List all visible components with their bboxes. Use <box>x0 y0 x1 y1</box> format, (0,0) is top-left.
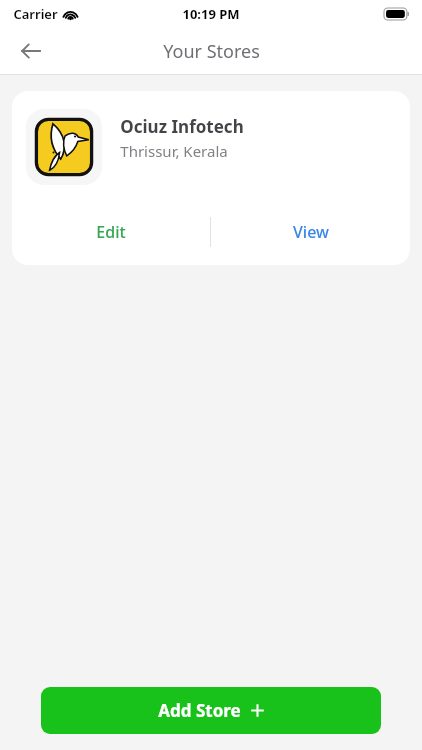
staticText: 10:19 PM <box>182 5 240 23</box>
staticText: Edit <box>96 221 126 243</box>
staticText: Thrissur, Kerala <box>120 141 228 161</box>
staticText: Carrier <box>13 5 58 23</box>
staticText: Add Store <box>158 699 241 722</box>
staticText: Ociuz Infotech <box>120 115 244 138</box>
button[interactable]: Edit <box>12 207 210 257</box>
staticText: Your Stores <box>163 39 260 64</box>
button[interactable]: View <box>211 207 410 257</box>
button[interactable]: Back <box>12 32 50 70</box>
button[interactable]: Add Store <box>41 687 381 734</box>
staticText: View <box>293 221 329 243</box>
